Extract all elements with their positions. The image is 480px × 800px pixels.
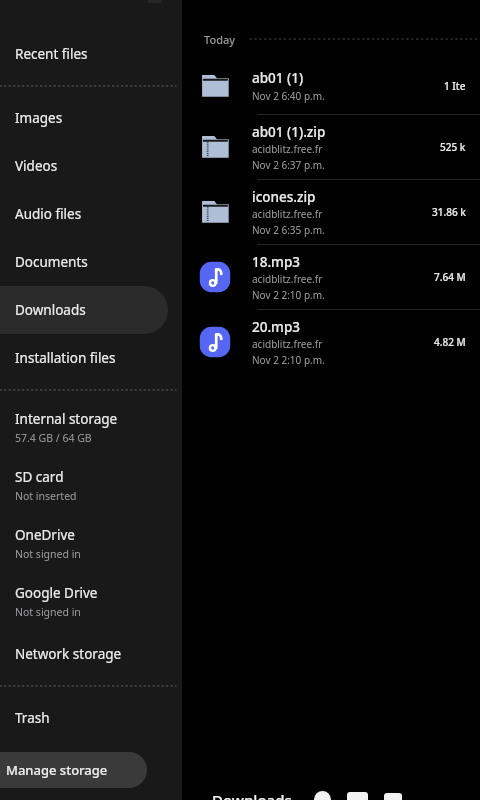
button[interactable]: Videos: [0, 142, 168, 190]
staticText: SD card: [15, 468, 64, 486]
staticText: Nov 2 2:10 p.m.: [252, 288, 325, 302]
button[interactable]: SD card: [0, 456, 168, 514]
staticText: Videos: [15, 157, 58, 175]
staticText: OneDrive: [15, 526, 75, 544]
staticText: Google Drive: [15, 584, 98, 602]
button[interactable]: Installation files: [0, 334, 168, 382]
staticText: 31.86 k: [432, 205, 466, 219]
staticText: Not inserted: [15, 489, 77, 503]
staticText: icones.zip: [252, 188, 316, 206]
staticText: acidblitz.free.fr: [252, 337, 323, 351]
staticText: Documents: [15, 253, 88, 271]
staticText: Manage storage: [6, 761, 108, 779]
button[interactable]: Documents: [0, 238, 168, 286]
button[interactable]: Audio files: [0, 190, 168, 238]
staticText: 18.mp3: [252, 253, 300, 271]
button[interactable]: 20.mp3: [182, 310, 480, 374]
staticText: Audio files: [15, 205, 82, 223]
staticText: Internal storage: [15, 410, 118, 428]
staticText: Nov 2 2:10 p.m.: [252, 353, 325, 367]
button[interactable]: More options: [384, 793, 402, 800]
staticText: Not signed in: [15, 605, 81, 619]
button[interactable]: ab01 (1): [182, 58, 480, 114]
button[interactable]: Images: [0, 94, 168, 142]
button[interactable]: Recent files: [0, 30, 168, 78]
staticText: Nov 2 6:40 p.m.: [252, 89, 325, 103]
button[interactable]: OneDrive: [0, 514, 168, 572]
staticText: 7.64 M: [434, 270, 466, 284]
staticText: Today: [204, 32, 236, 47]
staticText: Installation files: [15, 349, 116, 367]
staticText: 20.mp3: [252, 318, 300, 336]
button[interactable]: Grid view: [347, 792, 368, 800]
button[interactable]: Manage storage: [0, 752, 147, 788]
button[interactable]: ab01 (1).zip: [182, 115, 480, 179]
button[interactable]: 18.mp3: [182, 245, 480, 309]
staticText: Downloads: [15, 301, 86, 319]
staticText: Trash: [15, 709, 50, 727]
button[interactable]: Internal storage: [0, 398, 168, 456]
staticText: 57.4 GB / 64 GB: [15, 431, 92, 445]
staticText: Not signed in: [15, 547, 81, 561]
staticText: Recent files: [15, 45, 88, 63]
staticText: acidblitz.free.fr: [252, 142, 323, 156]
button[interactable]: Downloads: [0, 286, 168, 334]
staticText: acidblitz.free.fr: [252, 272, 323, 286]
button[interactable]: icones.zip: [182, 180, 480, 244]
staticText: 525 k: [440, 140, 466, 154]
staticText: 1 Ite: [444, 79, 466, 93]
staticText: 4.82 M: [434, 335, 466, 349]
staticText: Nov 2 6:37 p.m.: [252, 158, 325, 172]
staticText: ab01 (1).zip: [252, 123, 326, 141]
staticText: Images: [15, 109, 63, 127]
staticText: Network storage: [15, 645, 122, 663]
staticText: Nov 2 6:35 p.m.: [252, 223, 325, 237]
button[interactable]: Trash: [0, 694, 168, 742]
staticText: Downloads: [212, 790, 292, 800]
staticText: acidblitz.free.fr: [252, 207, 323, 221]
button[interactable]: Network storage: [0, 630, 168, 678]
staticText: ab01 (1): [252, 69, 304, 87]
button[interactable]: Search: [314, 791, 331, 800]
button[interactable]: Google Drive: [0, 572, 168, 630]
